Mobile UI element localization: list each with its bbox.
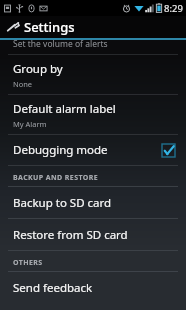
- staticText: Restore from SD card: [13, 227, 128, 243]
- staticText: Default alarm label: [13, 101, 116, 117]
- button[interactable]: Settings: [0, 16, 186, 38]
- staticText: BACKUP AND RESTORE: [13, 173, 98, 183]
- button[interactable]: Backup to SD card: [0, 187, 186, 218]
- button[interactable]: Debugging mode: [0, 135, 186, 165]
- staticText: Send feedback: [13, 280, 93, 296]
- staticText: My Alarm: [13, 119, 47, 129]
- staticText: Backup to SD card: [13, 195, 112, 211]
- staticText: OTHERS: [13, 258, 43, 268]
- staticText: Debugging mode: [13, 142, 162, 158]
- staticText: 8:29: [164, 2, 183, 15]
- button[interactable]: Send feedback: [0, 272, 186, 303]
- staticText: Settings: [24, 18, 75, 36]
- staticText: Group by: [13, 61, 63, 77]
- button[interactable]: Restore from SD card: [0, 219, 186, 250]
- button[interactable]: Default alarm label: [0, 95, 186, 134]
- staticText: Set the volume of alerts: [13, 38, 108, 50]
- other: Settings: [4, 19, 20, 35]
- staticText: None: [13, 79, 33, 89]
- other: Debugging mode checkbox, checked: [162, 144, 175, 157]
- button[interactable]: Group by: [0, 55, 186, 94]
